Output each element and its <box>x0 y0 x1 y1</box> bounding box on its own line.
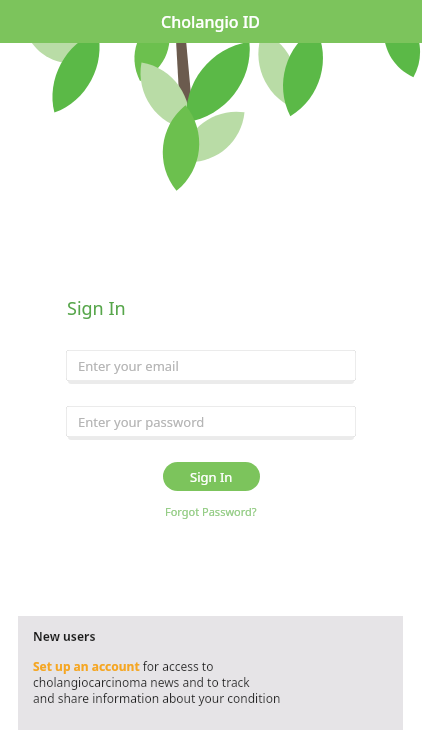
staticText: Enter your password <box>78 413 205 431</box>
staticText: Sign In <box>190 468 233 486</box>
button[interactable]: Forgot Password? <box>161 500 261 523</box>
button[interactable]: Set up an account for access to cholangi… <box>33 658 281 706</box>
staticText: Sign In <box>67 296 126 321</box>
button[interactable]: Enter your email <box>66 350 356 381</box>
button[interactable]: Sign In <box>163 462 260 491</box>
staticText: New users <box>33 628 96 644</box>
staticText: Cholangio ID <box>161 11 261 33</box>
button[interactable]: Enter your password <box>66 406 356 437</box>
staticText: Enter your email <box>78 357 179 375</box>
staticText: Forgot Password? <box>165 504 257 519</box>
staticText: Set up an account for access to cholangi… <box>33 658 281 706</box>
